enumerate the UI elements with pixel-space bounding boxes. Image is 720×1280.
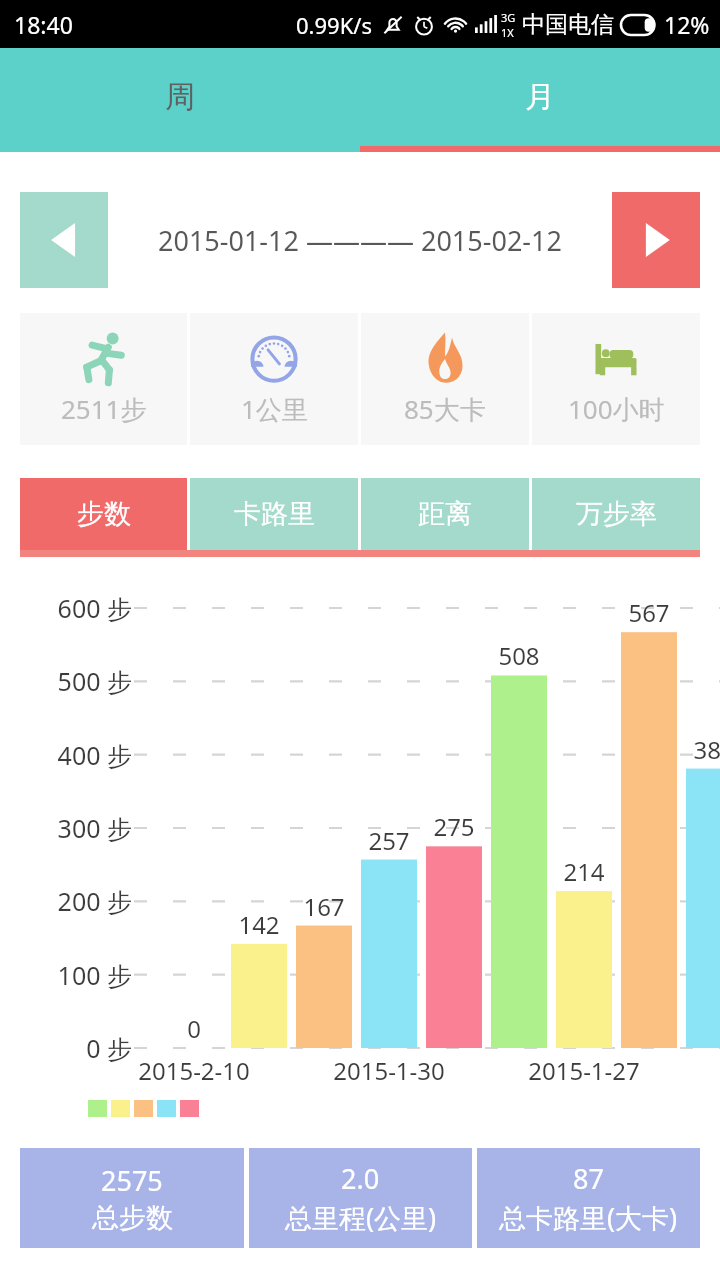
staticText: 2015-1-27 — [514, 1054, 654, 1087]
staticText: 1公里 — [241, 391, 308, 427]
staticText: 总里程(公里) — [285, 1199, 437, 1236]
button[interactable]: 87 — [477, 1148, 700, 1248]
button[interactable]: 2511步 — [20, 313, 187, 445]
staticText: 214 — [554, 855, 614, 888]
staticText: 400 步 — [24, 738, 132, 772]
staticText: 0 步 — [24, 1031, 132, 1065]
staticText: 2.0 — [341, 1160, 380, 1197]
button[interactable]: 85大卡 — [361, 313, 529, 445]
staticText: 18:40 — [14, 9, 73, 40]
staticText: 300 步 — [24, 811, 132, 845]
staticText: 0.99K/s — [296, 10, 372, 40]
button[interactable]: 1公里 — [190, 313, 358, 445]
button[interactable]: 距离 — [361, 478, 529, 550]
button[interactable]: 月 — [360, 48, 720, 146]
staticText: 600 步 — [24, 591, 132, 625]
staticText: 0 — [164, 1012, 224, 1045]
staticText: 周 — [165, 78, 195, 116]
staticText: 381 — [684, 733, 720, 766]
staticText: 2015-2-10 — [124, 1054, 264, 1087]
staticText: 月 — [525, 78, 555, 116]
button[interactable]: 100小时 — [532, 313, 700, 445]
staticText: 万步率 — [576, 497, 657, 531]
button[interactable]: 2.0 — [249, 1148, 472, 1248]
staticText: 100小时 — [568, 391, 665, 427]
staticText: 142 — [229, 908, 289, 941]
staticText: 167 — [294, 890, 354, 923]
staticText: 2511步 — [61, 391, 147, 427]
staticText: 卡路里 — [234, 497, 315, 531]
button[interactable]: Previous period — [20, 192, 108, 288]
button[interactable]: 2575 — [20, 1148, 244, 1248]
staticText: 85大卡 — [404, 391, 486, 427]
staticText: 567 — [619, 596, 679, 629]
button[interactable]: 周 — [0, 48, 360, 146]
staticText: 87 — [573, 1160, 604, 1197]
staticText: 中国电信 — [522, 10, 614, 39]
staticText: 总步数 — [92, 1201, 173, 1235]
staticText: 275 — [424, 810, 484, 843]
button[interactable]: Next period — [612, 192, 700, 288]
button[interactable]: 步数 — [20, 478, 187, 550]
staticText: 3G — [501, 10, 516, 25]
staticText: 257 — [359, 824, 419, 857]
button[interactable]: 2015-01-12 ———— 2015-02-12 — [108, 192, 612, 288]
staticText: 200 步 — [24, 884, 132, 918]
staticText: 总卡路里(大卡) — [499, 1199, 678, 1236]
staticText: 距离 — [418, 497, 472, 531]
staticText: 500 步 — [24, 664, 132, 698]
staticText: 100 步 — [24, 958, 132, 992]
button[interactable]: 卡路里 — [190, 478, 358, 550]
staticText: 2015-01-12 ———— 2015-02-12 — [158, 222, 562, 259]
staticText: 12% — [664, 9, 710, 40]
staticText: 步数 — [77, 497, 131, 531]
button[interactable]: 万步率 — [532, 478, 700, 550]
staticText: 1X — [501, 25, 514, 40]
staticText: 2575 — [101, 1162, 163, 1199]
staticText: 2015-1-30 — [319, 1054, 459, 1087]
staticText: 508 — [489, 639, 549, 672]
